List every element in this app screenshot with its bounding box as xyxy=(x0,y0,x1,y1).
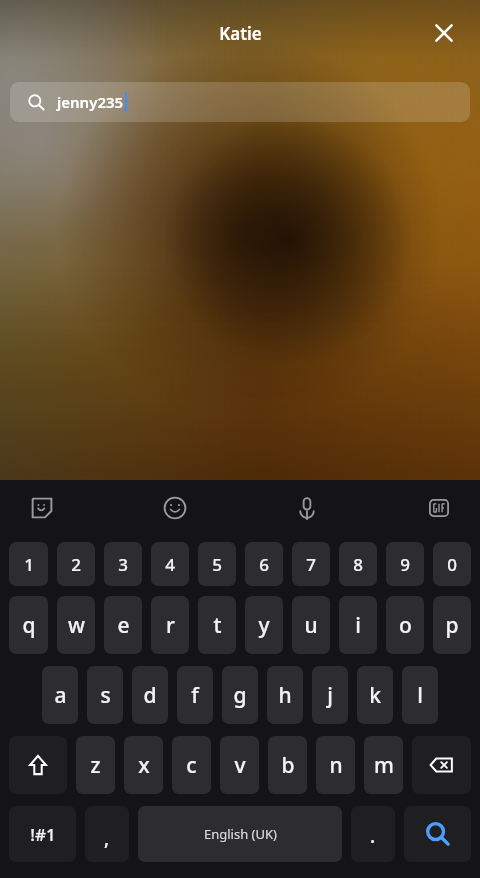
staticText: m xyxy=(374,751,394,780)
staticText: !#1 xyxy=(30,823,56,846)
staticText: 3 xyxy=(118,553,128,576)
staticText: b xyxy=(281,751,295,780)
button[interactable]: GIF xyxy=(415,484,463,532)
button[interactable]: d xyxy=(132,666,168,724)
button[interactable]: p xyxy=(433,596,471,654)
staticText: 7 xyxy=(306,553,316,576)
button[interactable]: g xyxy=(222,666,258,724)
button[interactable]: 0 xyxy=(433,542,471,586)
button[interactable]: Sticker xyxy=(18,484,66,532)
button[interactable]: English (UK) xyxy=(138,806,342,862)
button[interactable]: jenny235 xyxy=(10,82,470,122)
button[interactable]: a xyxy=(42,666,78,724)
button[interactable]: n xyxy=(316,736,355,794)
staticText: jenny235 xyxy=(57,92,124,112)
button[interactable]: 8 xyxy=(339,542,377,586)
staticText: x xyxy=(138,751,150,780)
staticText: s xyxy=(100,681,111,710)
staticText: 6 xyxy=(259,553,269,576)
staticText: h xyxy=(278,681,292,710)
staticText: , xyxy=(104,825,110,851)
button[interactable]: q xyxy=(9,596,48,654)
button[interactable]: Voice input xyxy=(283,484,331,532)
button[interactable]: e xyxy=(104,596,142,654)
button[interactable]: y xyxy=(245,596,283,654)
button[interactable]: 7 xyxy=(292,542,330,586)
staticText: z xyxy=(90,751,101,780)
button[interactable]: Close xyxy=(416,5,472,61)
button[interactable]: r xyxy=(151,596,189,654)
staticText: u xyxy=(304,611,318,640)
staticText: 5 xyxy=(212,553,222,576)
staticText: Katie xyxy=(219,22,262,45)
staticText: r xyxy=(166,611,175,640)
staticText: l xyxy=(417,681,423,710)
button[interactable]: 6 xyxy=(245,542,283,586)
button[interactable]: m xyxy=(364,736,403,794)
button[interactable]: v xyxy=(220,736,259,794)
staticText: g xyxy=(233,681,247,710)
staticText: k xyxy=(369,681,381,710)
staticText: 0 xyxy=(447,553,457,576)
button[interactable]: x xyxy=(124,736,163,794)
button[interactable]: b xyxy=(268,736,307,794)
button[interactable]: j xyxy=(312,666,348,724)
staticText: a xyxy=(54,681,67,710)
button[interactable]: h xyxy=(267,666,303,724)
button[interactable]: f xyxy=(177,666,213,724)
staticText: c xyxy=(186,751,197,780)
button[interactable]: 1 xyxy=(9,542,48,586)
staticText: j xyxy=(327,681,333,710)
staticText: q xyxy=(22,611,36,640)
staticText: v xyxy=(234,751,246,780)
button[interactable]: l xyxy=(402,666,438,724)
staticText: t xyxy=(213,611,222,640)
button[interactable]: Search xyxy=(404,806,471,862)
staticText: f xyxy=(191,681,199,710)
staticText: o xyxy=(399,611,412,640)
staticText: y xyxy=(258,611,270,640)
button[interactable]: w xyxy=(57,596,95,654)
button[interactable]: 9 xyxy=(386,542,424,586)
staticText: . xyxy=(370,823,376,849)
button[interactable]: Shift xyxy=(9,736,67,794)
button[interactable]: Emoji xyxy=(151,484,199,532)
button[interactable]: t xyxy=(198,596,236,654)
staticText: e xyxy=(117,611,130,640)
button[interactable]: 5 xyxy=(198,542,236,586)
staticText: d xyxy=(143,681,157,710)
button[interactable]: Backspace xyxy=(412,736,471,794)
staticText: English (UK) xyxy=(204,825,277,843)
button[interactable]: c xyxy=(172,736,211,794)
button[interactable]: k xyxy=(357,666,393,724)
staticText: i xyxy=(355,611,361,640)
staticText: n xyxy=(329,751,343,780)
button[interactable]: 4 xyxy=(151,542,189,586)
button[interactable]: !#1 xyxy=(9,806,76,862)
button[interactable]: . xyxy=(351,806,395,862)
staticText: 2 xyxy=(71,553,81,576)
button[interactable]: o xyxy=(386,596,424,654)
button[interactable]: i xyxy=(339,596,377,654)
staticText: 8 xyxy=(353,553,363,576)
staticText: 1 xyxy=(24,553,34,576)
button[interactable]: u xyxy=(292,596,330,654)
staticText: 9 xyxy=(400,553,410,576)
button[interactable]: , xyxy=(85,806,129,862)
button[interactable]: z xyxy=(76,736,115,794)
button[interactable]: 3 xyxy=(104,542,142,586)
staticText: p xyxy=(445,611,459,640)
button[interactable]: s xyxy=(87,666,123,724)
button[interactable]: 2 xyxy=(57,542,95,586)
staticText: w xyxy=(68,611,85,640)
staticText: 4 xyxy=(165,553,175,576)
